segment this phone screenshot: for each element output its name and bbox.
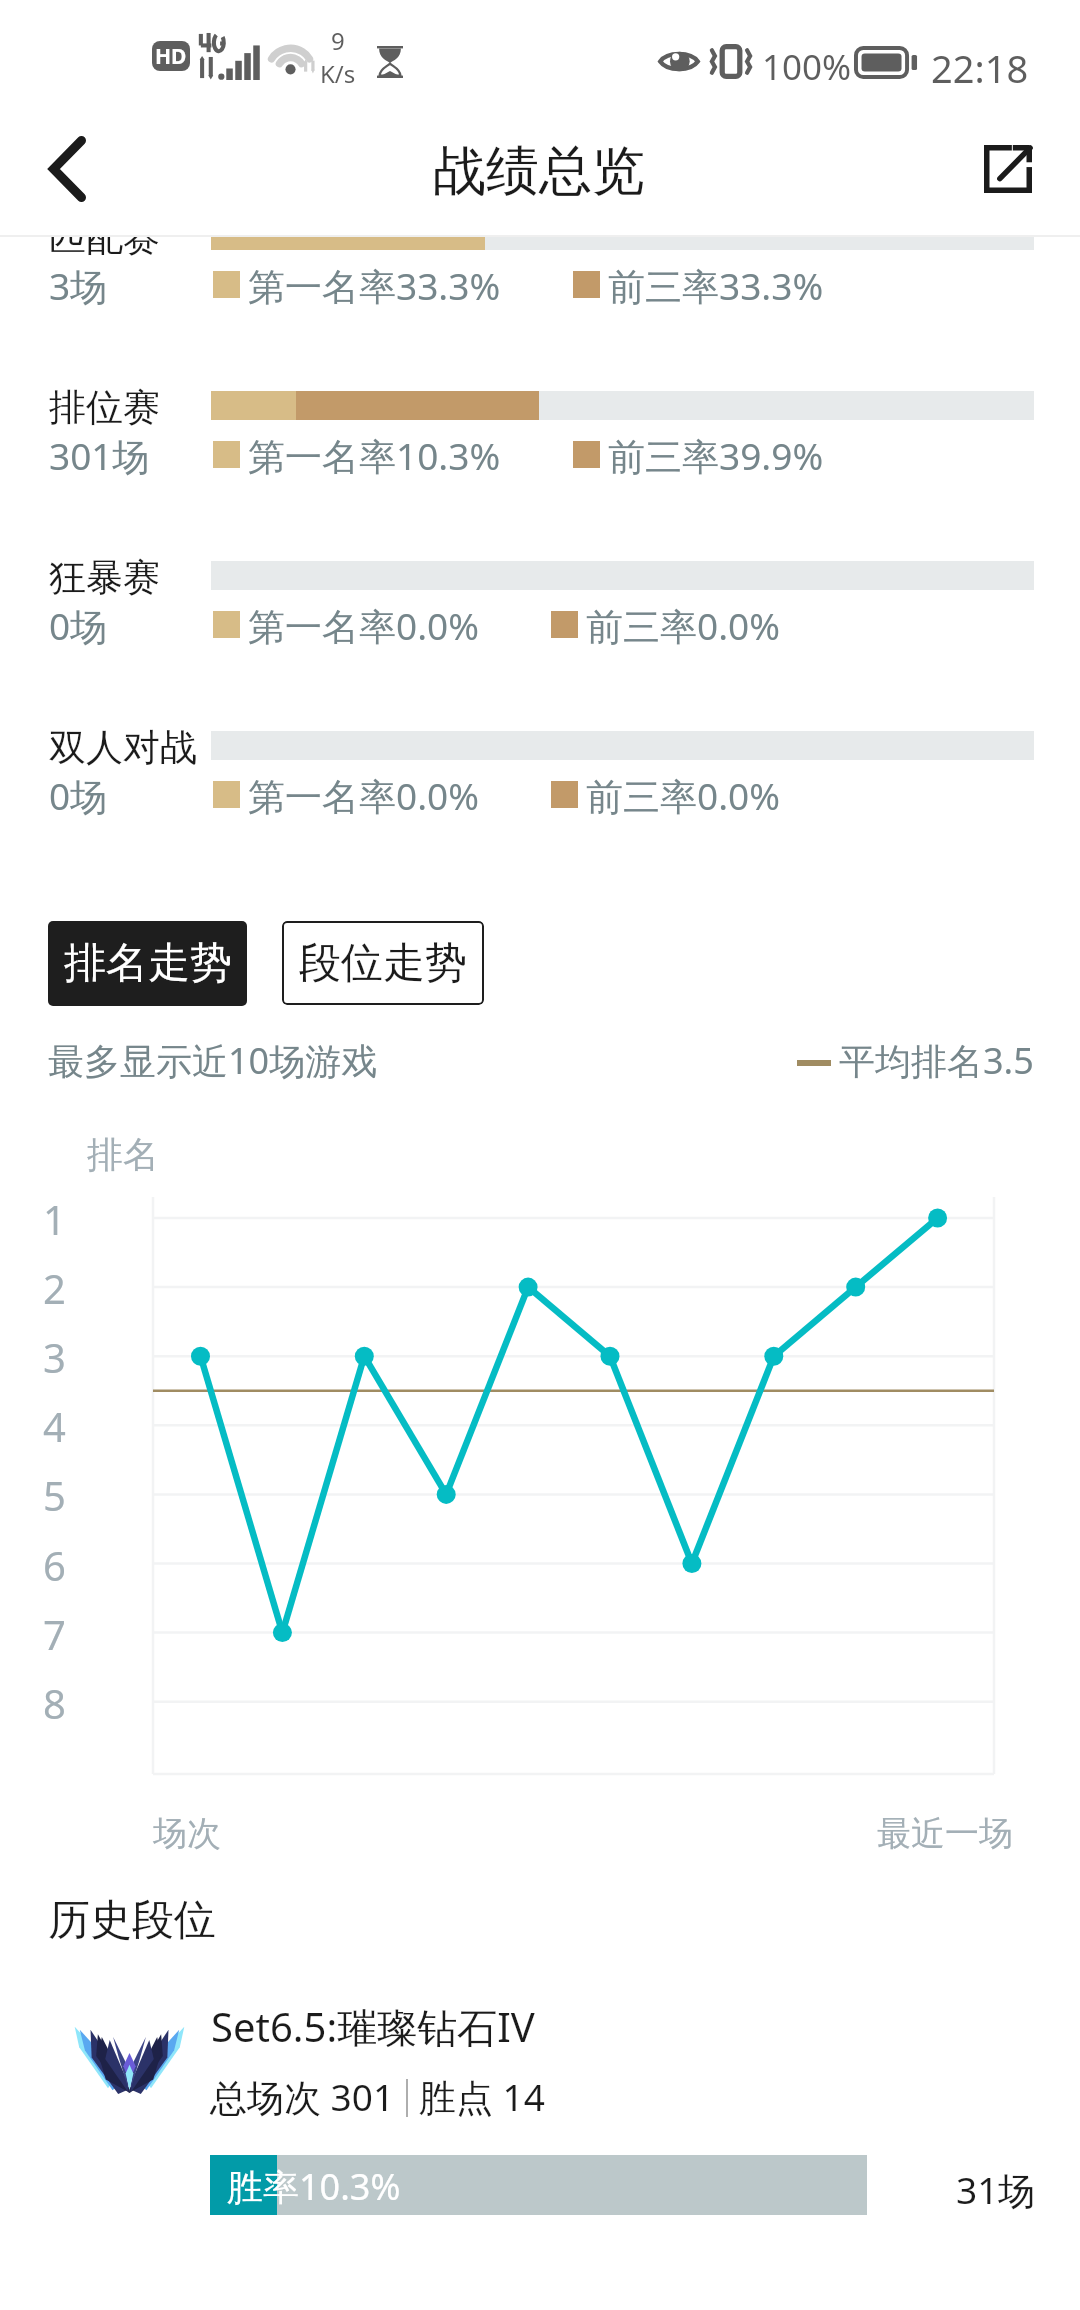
staticText: 双人对战 xyxy=(49,724,197,771)
staticText: 2 xyxy=(43,1261,66,1315)
staticText: 胜率10.3% xyxy=(227,2162,401,2211)
staticText: 3 xyxy=(43,1330,66,1384)
staticText: 排位赛 xyxy=(49,384,160,431)
staticText: 排名 xyxy=(87,1132,159,1177)
staticText: 最多显示近10场游戏 xyxy=(48,1036,378,1085)
staticText: 第一名率0.0% xyxy=(248,600,479,651)
staticText: 1 xyxy=(43,1192,66,1246)
button[interactable]: 段位走势 xyxy=(282,921,484,1005)
staticText: 场次 xyxy=(153,1812,221,1855)
staticText: 胜点 14 xyxy=(419,2071,545,2122)
staticText: 狂暴赛 xyxy=(49,554,160,601)
staticText: 总场次 301 xyxy=(210,2071,395,2122)
staticText: 战绩总览 xyxy=(433,138,645,205)
staticText: 301场 xyxy=(49,430,150,481)
staticText: 0场 xyxy=(49,600,108,651)
staticText: 8 xyxy=(43,1676,66,1730)
button[interactable]: 匹配赛 xyxy=(0,236,1080,312)
button[interactable]: 排名走势 xyxy=(48,921,247,1006)
staticText: 6 xyxy=(43,1538,66,1592)
staticText: 第一名率10.3% xyxy=(248,430,501,481)
staticText: 7 xyxy=(43,1607,66,1661)
staticText: Set6.5:璀璨钻石IV xyxy=(211,1999,535,2054)
staticText: 匹配赛 xyxy=(49,236,160,261)
button[interactable]: 狂暴赛 xyxy=(0,547,1080,652)
button[interactable]: 排位赛 xyxy=(0,377,1080,482)
button[interactable]: Back xyxy=(0,106,134,232)
staticText: 3场 xyxy=(49,260,108,311)
staticText: 100% xyxy=(762,43,852,91)
staticText: 排名走势 xyxy=(64,937,232,990)
button[interactable]: Set6.5:璀璨钻石IV xyxy=(0,1975,1080,2237)
staticText: 平均排名3.5 xyxy=(839,1036,1034,1085)
staticText: 段位走势 xyxy=(299,937,467,990)
staticText: 31场 xyxy=(956,2164,1036,2215)
staticText: K/s xyxy=(320,57,356,90)
staticText: 第一名率33.3% xyxy=(248,260,501,311)
staticText: 历史段位 xyxy=(48,1894,216,1947)
staticText: 4 xyxy=(43,1399,66,1453)
button[interactable]: 双人对战 xyxy=(0,717,1080,822)
staticText: 前三率39.9% xyxy=(608,430,824,481)
staticText: 5 xyxy=(43,1468,66,1522)
button[interactable]: Share xyxy=(941,106,1075,232)
staticText: 最近一场 xyxy=(877,1812,1013,1855)
staticText: 9 xyxy=(331,24,345,57)
staticText: 前三率0.0% xyxy=(586,770,780,821)
staticText: 22:18 xyxy=(931,42,1029,94)
staticText: HD xyxy=(155,42,187,71)
staticText: 前三率33.3% xyxy=(608,260,824,311)
staticText: 前三率0.0% xyxy=(586,600,780,651)
staticText: 第一名率0.0% xyxy=(248,770,479,821)
staticText: 0场 xyxy=(49,770,108,821)
